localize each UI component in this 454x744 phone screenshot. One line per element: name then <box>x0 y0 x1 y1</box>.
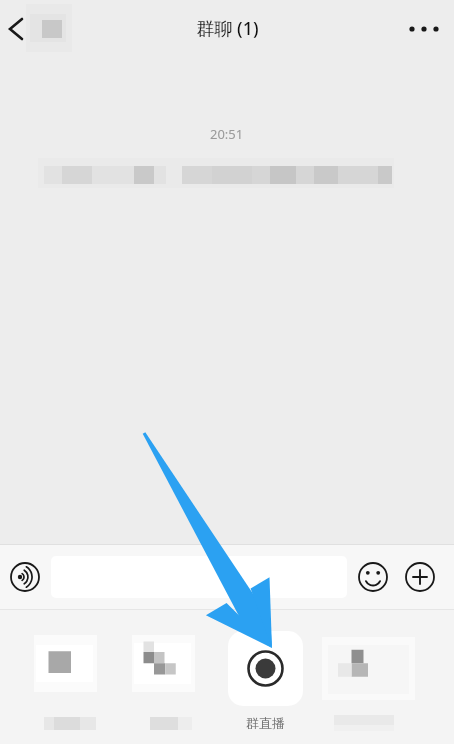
button[interactable] <box>228 631 303 706</box>
button[interactable]: Emoji <box>358 562 388 592</box>
staticText: 群直播 <box>246 715 285 731</box>
button[interactable]: Back <box>0 0 74 56</box>
button[interactable]: More functions <box>405 562 435 592</box>
button[interactable]: More options <box>400 0 454 56</box>
button[interactable]: Function 3 <box>326 631 401 706</box>
staticText: 群聊 (1) <box>196 16 259 41</box>
button[interactable]: Function 1 <box>130 631 205 706</box>
staticText: 20:51 <box>210 125 244 143</box>
button[interactable]: Function 0 <box>32 631 107 706</box>
button[interactable]: Voice message <box>10 562 40 592</box>
button[interactable] <box>51 556 347 598</box>
